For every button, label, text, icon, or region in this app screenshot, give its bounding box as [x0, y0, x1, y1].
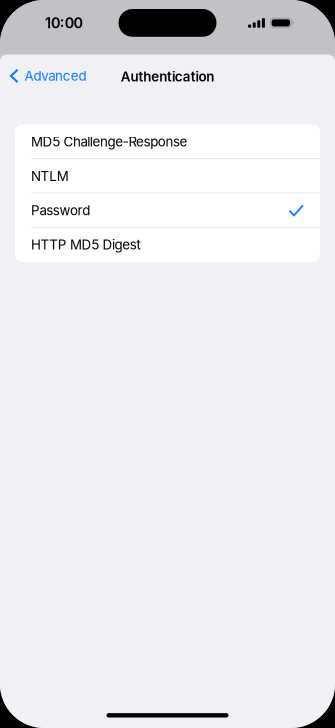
button[interactable]: NTLM: [15, 159, 320, 193]
staticText: Password: [31, 202, 90, 218]
staticText: 10:00: [45, 14, 83, 32]
staticText: NTLM: [31, 168, 69, 184]
staticText: Advanced: [25, 68, 86, 84]
button[interactable]: Advanced: [0, 61, 86, 93]
button[interactable]: Password: [15, 193, 320, 228]
staticText: Authentication: [121, 69, 214, 85]
staticText: MD5 Challenge-Response: [31, 134, 188, 150]
button[interactable]: HTTP MD5 Digest: [15, 228, 320, 262]
button[interactable]: MD5 Challenge-Response: [15, 124, 320, 159]
staticText: HTTP MD5 Digest: [31, 237, 140, 253]
